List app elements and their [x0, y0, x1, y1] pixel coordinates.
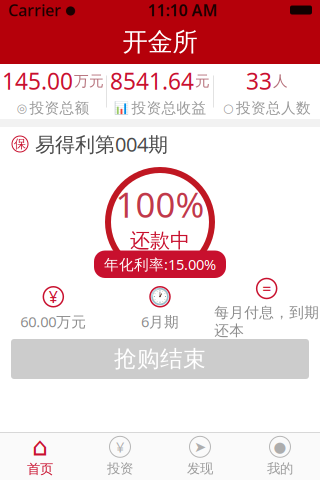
- staticText: 首页: [27, 461, 53, 477]
- button[interactable]: 抢购结束: [11, 339, 309, 379]
- staticText: Carrier: [8, 0, 61, 21]
- staticText: 易得利第004期: [35, 131, 168, 157]
- staticText: 60.00万元: [20, 312, 86, 331]
- staticText: 投资总额: [29, 99, 89, 117]
- staticText: ○: [223, 101, 233, 115]
- staticText: ➤: [194, 438, 206, 455]
- staticText: 开金所: [122, 26, 197, 57]
- staticText: ¥: [49, 286, 58, 307]
- staticText: 发现: [187, 460, 213, 477]
- staticText: 投资: [107, 460, 133, 477]
- button[interactable]: ⌂: [0, 433, 80, 480]
- staticText: 元: [195, 72, 210, 90]
- staticText: ●: [65, 3, 75, 17]
- staticText: 33: [246, 66, 272, 96]
- staticText: 抢购结束: [114, 345, 206, 373]
- staticText: 我的: [267, 460, 293, 477]
- staticText: 8541.64: [110, 66, 194, 96]
- staticText: ◎: [16, 101, 26, 115]
- staticText: 人: [273, 72, 288, 90]
- button[interactable]: ●: [240, 433, 320, 480]
- staticText: 投资总收益: [131, 99, 206, 117]
- staticText: 📊: [113, 101, 128, 115]
- staticText: 万元: [74, 72, 104, 90]
- staticText: ●: [273, 438, 286, 455]
- staticText: 年化利率:15.00%: [104, 254, 216, 274]
- staticText: 🕐: [150, 288, 170, 306]
- staticText: 11:10 AM: [147, 0, 217, 21]
- staticText: 还款中: [130, 228, 190, 253]
- button[interactable]: ➤: [160, 433, 240, 480]
- staticText: 100%: [115, 181, 204, 227]
- staticText: ⌂: [32, 432, 48, 461]
- staticText: 每月付息，到期还本: [214, 303, 319, 339]
- staticText: ¥: [116, 437, 124, 457]
- staticText: 投资总人数: [236, 99, 311, 117]
- staticText: 145.00: [2, 66, 73, 96]
- button[interactable]: ¥: [80, 433, 160, 480]
- staticText: 6月期: [141, 312, 179, 331]
- staticText: 保: [14, 137, 26, 151]
- staticText: =: [262, 278, 271, 299]
